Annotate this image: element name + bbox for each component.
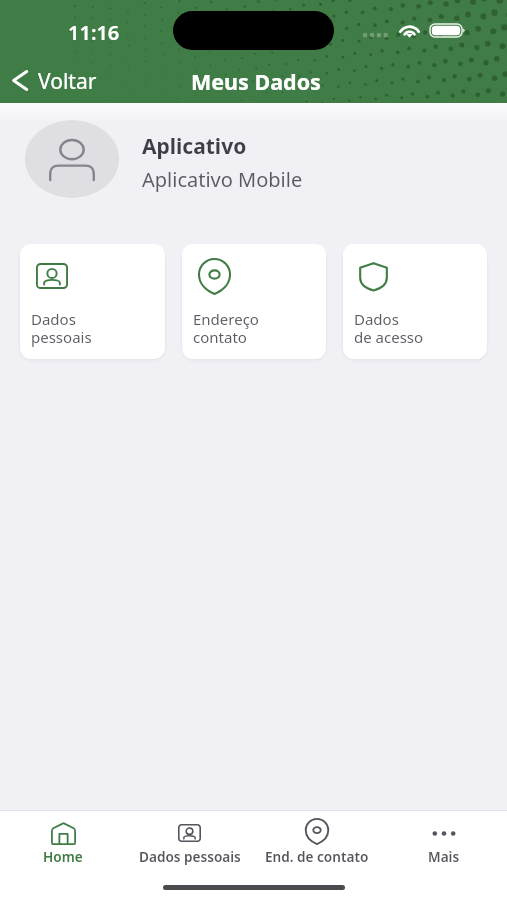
staticText: Dados pessoais bbox=[31, 309, 92, 348]
button[interactable]: Home bbox=[0, 811, 126, 873]
staticText: Meus Dados bbox=[191, 67, 321, 96]
staticText: Dados de acesso bbox=[354, 309, 424, 348]
button[interactable]: Voltar bbox=[0, 62, 109, 99]
staticText: Aplicativo Mobile bbox=[142, 166, 303, 193]
button[interactable]: End. de contato bbox=[253, 811, 380, 873]
staticText: Endereço contato bbox=[193, 309, 259, 348]
button[interactable]: Dados de acesso bbox=[343, 244, 487, 359]
staticText: End. de contato bbox=[265, 847, 369, 866]
staticText: Mais bbox=[428, 847, 460, 866]
staticText: 11:16 bbox=[68, 19, 120, 46]
button[interactable]: Dados pessoais bbox=[126, 811, 253, 873]
staticText: Aplicativo bbox=[142, 132, 247, 161]
staticText: Voltar bbox=[38, 67, 97, 96]
button[interactable]: Endereço contato bbox=[182, 244, 326, 359]
staticText: Home bbox=[43, 847, 83, 866]
button[interactable]: Dados pessoais bbox=[20, 244, 165, 359]
button[interactable]: Mais bbox=[380, 811, 507, 873]
staticText: Dados pessoais bbox=[139, 847, 241, 866]
